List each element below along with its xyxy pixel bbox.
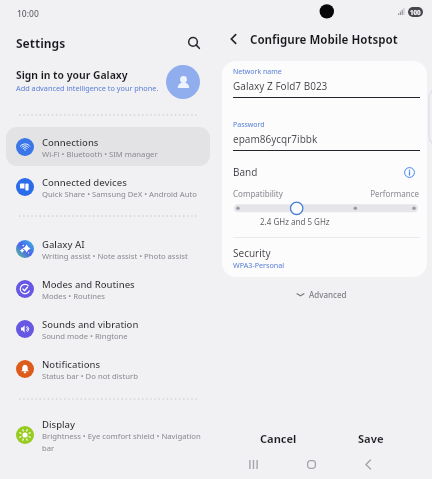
button[interactable]: Sign in to your Galaxy — [6, 63, 210, 101]
button[interactable]: Advanced — [296, 286, 347, 302]
staticText: WPA3-Personal — [233, 260, 285, 270]
button[interactable]: Modes and Routines — [6, 270, 210, 308]
staticText: Network name — [233, 67, 282, 77]
staticText: Connections — [42, 136, 99, 149]
button[interactable]: Notifications — [6, 350, 210, 388]
staticText: Advanced — [309, 289, 347, 300]
staticText: Settings — [16, 35, 66, 51]
staticText: Cancel — [260, 431, 297, 446]
staticText: 100 — [410, 8, 421, 16]
staticText: Compatibility — [233, 188, 283, 199]
staticText: Galaxy AI — [42, 238, 85, 251]
staticText: Galaxy Z Fold7 B023 — [233, 79, 328, 93]
staticText: Sound mode • Ringtone — [42, 331, 204, 341]
button[interactable]: Samsung account — [166, 65, 200, 99]
button[interactable]: Save — [339, 427, 403, 449]
staticText: Notifications — [42, 358, 101, 371]
staticText: Writing assist • Note assist • Photo ass… — [42, 251, 204, 261]
staticText: Performance — [340, 188, 419, 199]
staticText: Connected devices — [42, 176, 127, 189]
button[interactable]: Recent apps — [245, 456, 262, 473]
staticText: Add advanced intelligence to your phone. — [16, 83, 159, 93]
button[interactable]: Band information — [401, 164, 418, 181]
staticText: Configure Mobile Hotspot — [250, 32, 398, 48]
staticText: Sounds and vibration — [42, 318, 139, 331]
staticText: Password — [233, 120, 265, 130]
staticText: Modes • Routines — [42, 291, 204, 301]
button[interactable]: Display — [6, 416, 210, 454]
staticText: 2.4 GHz and 5 GHz — [260, 216, 330, 227]
staticText: Brightness • Eye comfort shield • Naviga… — [42, 431, 204, 453]
button[interactable]: Sounds and vibration — [6, 310, 210, 348]
staticText: Save — [358, 431, 384, 446]
button[interactable]: Back — [224, 29, 244, 49]
staticText: epam86ycqr7ibbk — [233, 132, 318, 146]
staticText: 10:00 — [17, 8, 39, 20]
staticText: Band — [233, 165, 258, 179]
button[interactable]: Connections — [6, 128, 210, 166]
button[interactable]: Back — [360, 456, 377, 473]
staticText: Security — [233, 246, 271, 260]
staticText: Display — [42, 418, 76, 431]
button[interactable]: Home — [303, 456, 320, 473]
button[interactable]: Galaxy AI — [6, 230, 210, 268]
staticText: Modes and Routines — [42, 278, 135, 291]
staticText: Wi-Fi • Bluetooth • SIM manager — [42, 149, 204, 159]
button[interactable]: Connected devices — [6, 168, 210, 206]
button[interactable]: Cancel — [246, 427, 310, 449]
staticText: Status bar • Do not disturb — [42, 371, 204, 381]
staticText: Quick Share • Samsung DeX • Android Auto — [42, 189, 204, 199]
staticText: Sign in to your Galaxy — [16, 68, 128, 82]
button[interactable]: Search — [184, 33, 204, 53]
